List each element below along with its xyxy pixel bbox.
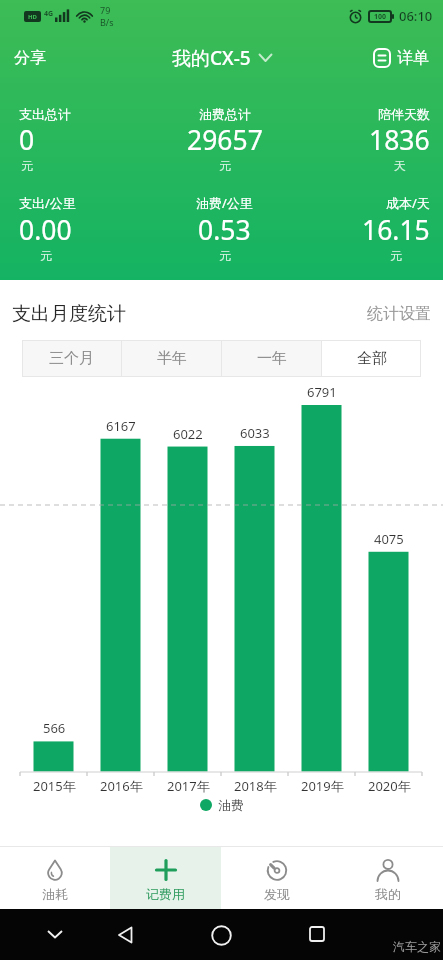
staticText: 元 bbox=[219, 248, 231, 263]
staticText: 陪伴天数 bbox=[378, 106, 430, 122]
button[interactable] bbox=[309, 926, 325, 942]
button[interactable]: 油耗 bbox=[0, 847, 110, 909]
staticText: 全部 bbox=[357, 349, 387, 368]
staticText: 566 bbox=[43, 719, 66, 737]
staticText: 三个月 bbox=[49, 349, 94, 368]
staticText: 6022 bbox=[173, 425, 203, 443]
staticText: 2020年 bbox=[368, 777, 411, 795]
staticText: 成本/天 bbox=[386, 194, 430, 212]
button[interactable]: 我的CX-5 bbox=[172, 45, 272, 71]
staticText: 油费总计 bbox=[199, 106, 251, 122]
staticText: 6167 bbox=[106, 417, 136, 435]
staticText: 2015年 bbox=[33, 777, 76, 795]
staticText: 1836 bbox=[369, 122, 430, 158]
button[interactable]: 半年 bbox=[122, 340, 221, 377]
staticText: 4G bbox=[44, 9, 54, 19]
staticText: 我的CX-5 bbox=[172, 45, 251, 71]
staticText: 统计设置 bbox=[367, 304, 431, 324]
staticText: 6033 bbox=[240, 424, 270, 442]
staticText: 4075 bbox=[374, 530, 404, 548]
staticText: 元 bbox=[40, 248, 52, 263]
staticText: 详单 bbox=[397, 48, 429, 68]
staticText: 油耗 bbox=[42, 886, 68, 902]
button[interactable]: 一年 bbox=[222, 340, 321, 377]
button[interactable]: 发现 bbox=[221, 847, 332, 909]
button[interactable]: 全部 bbox=[322, 340, 421, 377]
button[interactable]: 统计设置 bbox=[367, 304, 431, 324]
staticText: 2016年 bbox=[100, 777, 143, 795]
staticText: HD bbox=[28, 13, 37, 21]
staticText: 一年 bbox=[257, 349, 287, 368]
staticText: 支出月度统计 bbox=[12, 302, 126, 326]
staticText: 0 bbox=[19, 122, 35, 158]
button[interactable]: 我的 bbox=[332, 847, 443, 909]
staticText: 汽车之家 bbox=[393, 939, 441, 954]
staticText: 我的 bbox=[375, 886, 401, 902]
button[interactable] bbox=[47, 930, 63, 939]
staticText: 元 bbox=[390, 248, 402, 263]
staticText: 16.15 bbox=[362, 212, 430, 248]
staticText: 记费用 bbox=[146, 886, 185, 902]
button[interactable]: 记费用 bbox=[110, 847, 221, 909]
button[interactable] bbox=[211, 925, 232, 946]
staticText: 天 bbox=[394, 158, 406, 173]
button[interactable] bbox=[117, 926, 134, 944]
staticText: 支出总计 bbox=[19, 106, 71, 122]
staticText: 2019年 bbox=[301, 777, 344, 795]
staticText: 分享 bbox=[14, 48, 46, 68]
button[interactable]: 详单 bbox=[366, 42, 435, 74]
staticText: 油费/公里 bbox=[196, 194, 253, 212]
staticText: 06:10 bbox=[399, 7, 433, 25]
staticText: 0.00 bbox=[19, 212, 72, 248]
staticText: 半年 bbox=[157, 349, 187, 368]
staticText: 0.53 bbox=[198, 212, 251, 248]
staticText: 29657 bbox=[187, 122, 263, 158]
staticText: B/s bbox=[100, 16, 114, 28]
staticText: 油费 bbox=[218, 797, 244, 813]
staticText: 发现 bbox=[264, 886, 290, 902]
button[interactable]: 分享 bbox=[8, 42, 52, 74]
button[interactable]: 三个月 bbox=[22, 340, 121, 377]
staticText: 支出/公里 bbox=[19, 194, 76, 212]
staticText: 2018年 bbox=[234, 777, 277, 795]
staticText: 100 bbox=[374, 12, 387, 22]
staticText: 2017年 bbox=[167, 777, 210, 795]
staticText: 元 bbox=[21, 158, 33, 173]
staticText: 元 bbox=[219, 158, 231, 173]
staticText: 79 bbox=[100, 4, 111, 16]
staticText: 6791 bbox=[307, 383, 337, 401]
